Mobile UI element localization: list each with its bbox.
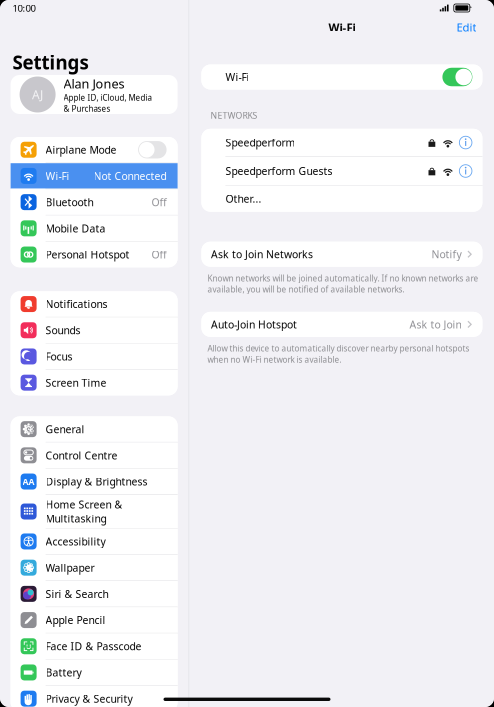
staticText: Control Centre <box>46 448 118 462</box>
button[interactable]: Focus <box>11 344 178 369</box>
button[interactable]: Home Screen & <box>11 495 178 528</box>
staticText: Allow this device to automatically disco… <box>207 343 469 354</box>
staticText: Focus <box>46 349 73 364</box>
staticText: Ask to Join <box>409 317 461 331</box>
staticText: 10:00 <box>13 1 36 15</box>
button[interactable]: Personal Hotspot <box>11 242 178 267</box>
staticText: Screen Time <box>46 376 107 390</box>
staticText: Airplane Mode <box>46 143 117 157</box>
button[interactable]: Speedperform Guests <box>201 157 482 185</box>
staticText: Off <box>152 195 167 209</box>
staticText: Mobile Data <box>46 221 106 235</box>
button[interactable]: Mobile Data <box>11 216 178 241</box>
staticText: Notify <box>431 247 461 261</box>
staticText: available, you will be notified of avail… <box>207 284 404 295</box>
staticText: Wallpaper <box>46 561 95 575</box>
staticText: Edit <box>456 19 476 35</box>
staticText: Multitasking <box>46 511 107 526</box>
button[interactable]: Accessibility <box>11 529 178 554</box>
staticText: & Purchases <box>64 103 111 114</box>
staticText: Sounds <box>46 323 81 337</box>
staticText: Known networks will be joined automatica… <box>207 273 478 284</box>
staticText: Auto-Join Hotspot <box>211 317 297 331</box>
button[interactable]: Screen Time <box>11 370 178 395</box>
button[interactable]: Ask to Join Networks <box>201 242 482 267</box>
button[interactable]: Notifications <box>11 291 178 317</box>
staticText: Speedperform Guests <box>225 164 332 178</box>
staticText: Apple ID, iCloud, Media <box>64 92 152 103</box>
button[interactable]: Edit <box>450 15 482 39</box>
staticText: Off <box>152 247 167 262</box>
staticText: Face ID & Passcode <box>46 639 142 653</box>
button[interactable]: AA <box>11 469 178 494</box>
staticText: Wi-Fi <box>328 19 355 35</box>
staticText: Display & Brightness <box>46 474 148 489</box>
staticText: Alan Jones <box>64 75 125 92</box>
staticText: Notifications <box>46 297 108 311</box>
staticText: Home Screen & <box>46 497 123 511</box>
staticText: Apple Pencil <box>46 613 106 627</box>
staticText: Other... <box>225 192 261 206</box>
button[interactable]: Wi-Fi <box>201 64 482 89</box>
staticText: Personal Hotspot <box>46 247 130 262</box>
button[interactable]: Speedperform <box>201 129 482 156</box>
button[interactable]: General <box>11 416 178 442</box>
staticText: Siri & Search <box>46 587 109 601</box>
button[interactable]: Bluetooth <box>11 189 178 215</box>
staticText: Ask to Join Networks <box>211 247 313 261</box>
staticText: Settings <box>13 50 89 75</box>
button[interactable]: Siri & Search <box>11 581 178 607</box>
staticText: Speedperform <box>225 135 295 150</box>
button[interactable]: Apple Pencil <box>11 607 178 633</box>
staticText: Privacy & Security <box>46 692 133 706</box>
button[interactable]: AJ <box>11 75 178 114</box>
button[interactable]: Wi-Fi <box>11 163 178 189</box>
staticText: NETWORKS <box>210 109 257 121</box>
button[interactable]: Face ID & Passcode <box>11 633 178 659</box>
staticText: Bluetooth <box>46 195 94 209</box>
staticText: Wi-Fi <box>46 169 70 183</box>
button[interactable]: Privacy & Security <box>11 686 178 707</box>
staticText: AA <box>23 476 35 487</box>
button[interactable]: Airplane Mode <box>11 137 178 162</box>
button[interactable]: Battery <box>11 660 178 685</box>
staticText: Not Connected <box>94 169 167 183</box>
staticText: Battery <box>46 665 82 680</box>
staticText: when no Wi-Fi network is available. <box>207 354 341 365</box>
button[interactable]: Control Centre <box>11 443 178 468</box>
staticText: Wi-Fi <box>225 70 249 84</box>
button[interactable]: Other... <box>201 186 482 212</box>
staticText: AJ <box>32 86 43 103</box>
button[interactable]: Wallpaper <box>11 555 178 580</box>
button[interactable]: Sounds <box>11 317 178 343</box>
staticText: General <box>46 422 85 436</box>
button[interactable]: Auto-Join Hotspot <box>201 312 482 337</box>
staticText: Accessibility <box>46 534 106 549</box>
